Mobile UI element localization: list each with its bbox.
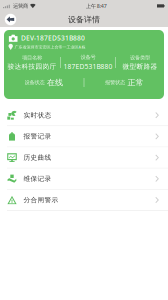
button[interactable]: 维保记录 [0,169,168,190]
staticText: 维保记录 [23,175,51,183]
button[interactable]: 分合闸警示 [0,190,168,211]
staticText: 项目名称 [22,54,42,61]
button[interactable]: 实时状态 [0,105,168,126]
staticText: 设备详情 [68,15,100,24]
staticText: 在线 [47,78,63,87]
button[interactable]: 返回 [3,12,18,27]
staticText: 实时状态 [23,111,51,119]
staticText: 运营商 [13,3,28,9]
button[interactable]: 报警记录 [0,126,168,147]
button[interactable]: 历史曲线 [0,147,168,169]
staticText: 报警记录 [23,132,51,140]
staticText: 骏达科技园岗厅 [7,62,56,71]
staticText: 广东省深圳市宝安区上合帝一工业区A栋 [15,44,86,50]
staticText: 设备状态 [24,79,44,86]
staticText: 微型断路器 [122,62,157,71]
staticText: 分合闸警示 [23,196,58,204]
staticText: 设备类型 [130,54,150,61]
staticText: 正常 [127,78,143,87]
staticText: DEV-187ED531B880 [21,34,85,42]
staticText: 历史曲线 [23,153,51,162]
staticText: 187ED531B880 [63,62,112,71]
staticText: 上午 8:47 [86,2,107,10]
staticText: 报警状态 [105,79,125,86]
staticText: 设备号 [80,54,95,61]
